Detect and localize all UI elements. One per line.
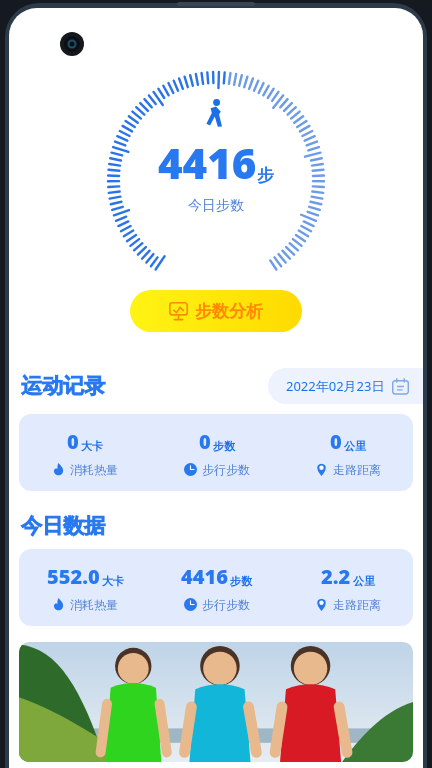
button[interactable]: 2022年02月23日 bbox=[268, 368, 423, 404]
staticText: 2.2 bbox=[321, 563, 351, 590]
staticText: 552.0 bbox=[47, 563, 100, 590]
staticText: 0 bbox=[199, 428, 211, 455]
staticText: 大卡 bbox=[102, 574, 124, 588]
staticText: 大卡 bbox=[81, 439, 103, 453]
button[interactable]: 0 bbox=[19, 414, 413, 491]
staticText: 走路距离 bbox=[333, 462, 381, 477]
staticText: 步 bbox=[257, 165, 274, 186]
staticText: 步数 bbox=[230, 574, 252, 588]
staticText: 今日数据 bbox=[21, 513, 105, 539]
staticText: 步数 bbox=[213, 439, 235, 453]
button[interactable]: 步数分析 bbox=[130, 290, 302, 332]
staticText: 2022年02月23日 bbox=[286, 377, 385, 395]
staticText: 消耗热量 bbox=[70, 462, 118, 477]
staticText: 步行步数 bbox=[202, 597, 250, 612]
staticText: 0 bbox=[67, 428, 79, 455]
staticText: 今日步数 bbox=[188, 197, 244, 215]
staticText: 公里 bbox=[353, 574, 375, 588]
staticText: 4416 bbox=[181, 563, 228, 590]
staticText: 0 bbox=[330, 428, 342, 455]
staticText: 4416 bbox=[158, 134, 257, 191]
button[interactable]: 552.0 bbox=[19, 549, 413, 626]
staticText: 消耗热量 bbox=[70, 597, 118, 612]
staticText: 运动记录 bbox=[21, 373, 105, 399]
staticText: 步行步数 bbox=[202, 462, 250, 477]
staticText: 公里 bbox=[344, 439, 366, 453]
staticText: 步数分析 bbox=[195, 301, 263, 322]
button[interactable]: Walking promo banner bbox=[19, 642, 413, 762]
staticText: 走路距离 bbox=[333, 597, 381, 612]
